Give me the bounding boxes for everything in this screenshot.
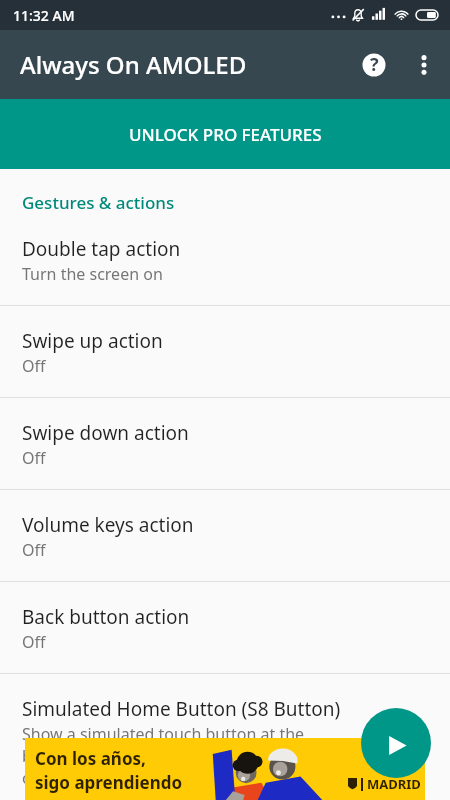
staticText: Con los años,: [35, 747, 146, 770]
staticText: Volume keys action: [22, 512, 194, 538]
staticText: Show a simulated touch button at the bot…: [22, 723, 305, 789]
button[interactable]: More options: [402, 43, 446, 87]
staticText: Simulated Home Button (S8 Button): [22, 696, 341, 722]
button[interactable]: Back button action: [0, 582, 450, 674]
staticText: Double tap action: [22, 236, 181, 262]
button[interactable]: Swipe down action: [0, 398, 450, 490]
staticText: Turn the screen on: [22, 263, 163, 285]
staticText: MADRID: [367, 775, 421, 793]
staticText: Off: [22, 355, 46, 377]
staticText: Swipe up action: [22, 328, 163, 354]
staticText: sigo aprendiendo: [35, 771, 183, 794]
staticText: Gestures & actions: [22, 191, 175, 214]
staticText: Back button action: [22, 604, 190, 630]
button[interactable]: Start: [361, 708, 431, 778]
staticText: 11:32 AM: [13, 6, 75, 25]
staticText: Off: [22, 539, 46, 561]
button[interactable]: Help: [350, 41, 398, 89]
staticText: ?: [370, 52, 379, 77]
staticText: Always On AMOLED: [20, 48, 247, 81]
button[interactable]: Con los años,: [25, 738, 425, 800]
staticText: UNLOCK PRO FEATURES: [129, 123, 322, 146]
button[interactable]: UNLOCK PRO FEATURES: [0, 99, 450, 169]
button[interactable]: Double tap action: [0, 214, 450, 306]
button[interactable]: Simulated Home Button (S8 Button): [0, 674, 450, 800]
staticText: Off: [22, 447, 46, 469]
button[interactable]: Volume keys action: [0, 490, 450, 582]
button[interactable]: Swipe up action: [0, 306, 450, 398]
staticText: Swipe down action: [22, 420, 189, 446]
staticText: Off: [22, 631, 46, 653]
